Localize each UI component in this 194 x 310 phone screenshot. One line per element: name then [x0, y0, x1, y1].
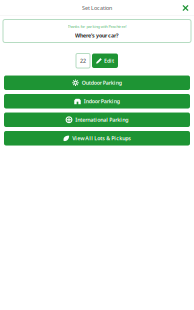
staticText: Thanks for parking with Peachtree! — [67, 24, 126, 29]
staticText: View All Lots & Pickups — [72, 135, 131, 142]
staticText: Edit — [104, 57, 114, 64]
staticText: Indoor Parking — [84, 98, 120, 105]
staticText: International Parking — [75, 116, 128, 123]
button[interactable]: Edit — [92, 53, 118, 68]
staticText: Set Location — [82, 4, 112, 12]
button[interactable]: Indoor Parking — [4, 94, 190, 108]
button[interactable]: View All Lots & Pickups — [4, 131, 190, 145]
button[interactable]: Outdoor Parking — [4, 75, 190, 90]
staticText: Where's your car? — [75, 32, 119, 39]
button[interactable]: International Parking — [4, 112, 190, 127]
staticText: 22 — [80, 57, 86, 64]
button[interactable]: Close — [177, 2, 194, 14]
staticText: Outdoor Parking — [82, 79, 122, 86]
